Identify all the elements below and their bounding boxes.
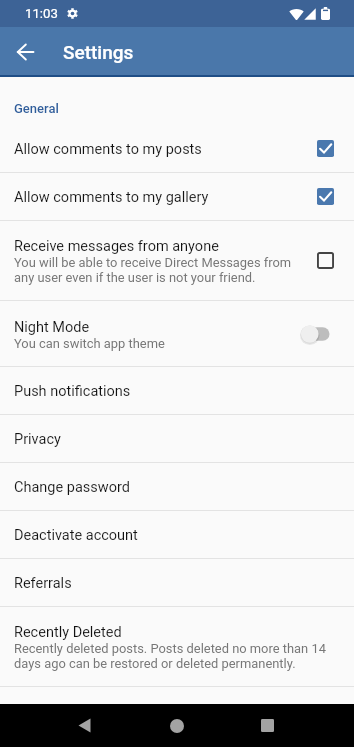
staticText: 11:03 — [25, 6, 58, 21]
button[interactable]: Receive messages from anyone — [0, 221, 354, 300]
button[interactable]: Change password — [0, 463, 354, 510]
staticText: Privacy — [14, 431, 61, 448]
button[interactable]: Allow comments to my posts — [0, 125, 354, 172]
staticText: Allow comments to my gallery — [14, 189, 209, 206]
button[interactable]: Back — [1, 27, 49, 77]
button[interactable]: Referrals — [0, 559, 354, 606]
staticText: Recently deleted posts. Posts deleted no… — [14, 641, 334, 671]
button[interactable]: Deactivate account — [0, 511, 354, 558]
staticText: Deactivate account — [14, 527, 138, 544]
button[interactable]: Recent apps — [246, 704, 289, 747]
staticText: Change password — [14, 479, 130, 496]
button[interactable]: Home — [155, 704, 198, 747]
button[interactable]: Night Mode — [0, 301, 354, 366]
staticText: Referrals — [14, 575, 72, 592]
button[interactable]: Push notifications — [0, 367, 354, 414]
staticText: Push notifications — [14, 383, 131, 400]
staticText: Settings — [63, 41, 134, 63]
button[interactable]: Privacy — [0, 415, 354, 462]
staticText: Receive messages from anyone — [14, 238, 219, 255]
staticText: General — [14, 101, 59, 116]
button[interactable]: Back — [63, 704, 106, 747]
staticText: Recently Deleted — [14, 624, 122, 641]
button[interactable]: Recently Deleted — [0, 607, 354, 686]
staticText: Allow comments to my posts — [14, 141, 202, 158]
staticText: You can switch app theme — [14, 336, 165, 351]
staticText: Night Mode — [14, 319, 90, 336]
button[interactable]: Allow comments to my gallery — [0, 173, 354, 220]
staticText: You will be able to receive Direct Messa… — [14, 255, 305, 285]
